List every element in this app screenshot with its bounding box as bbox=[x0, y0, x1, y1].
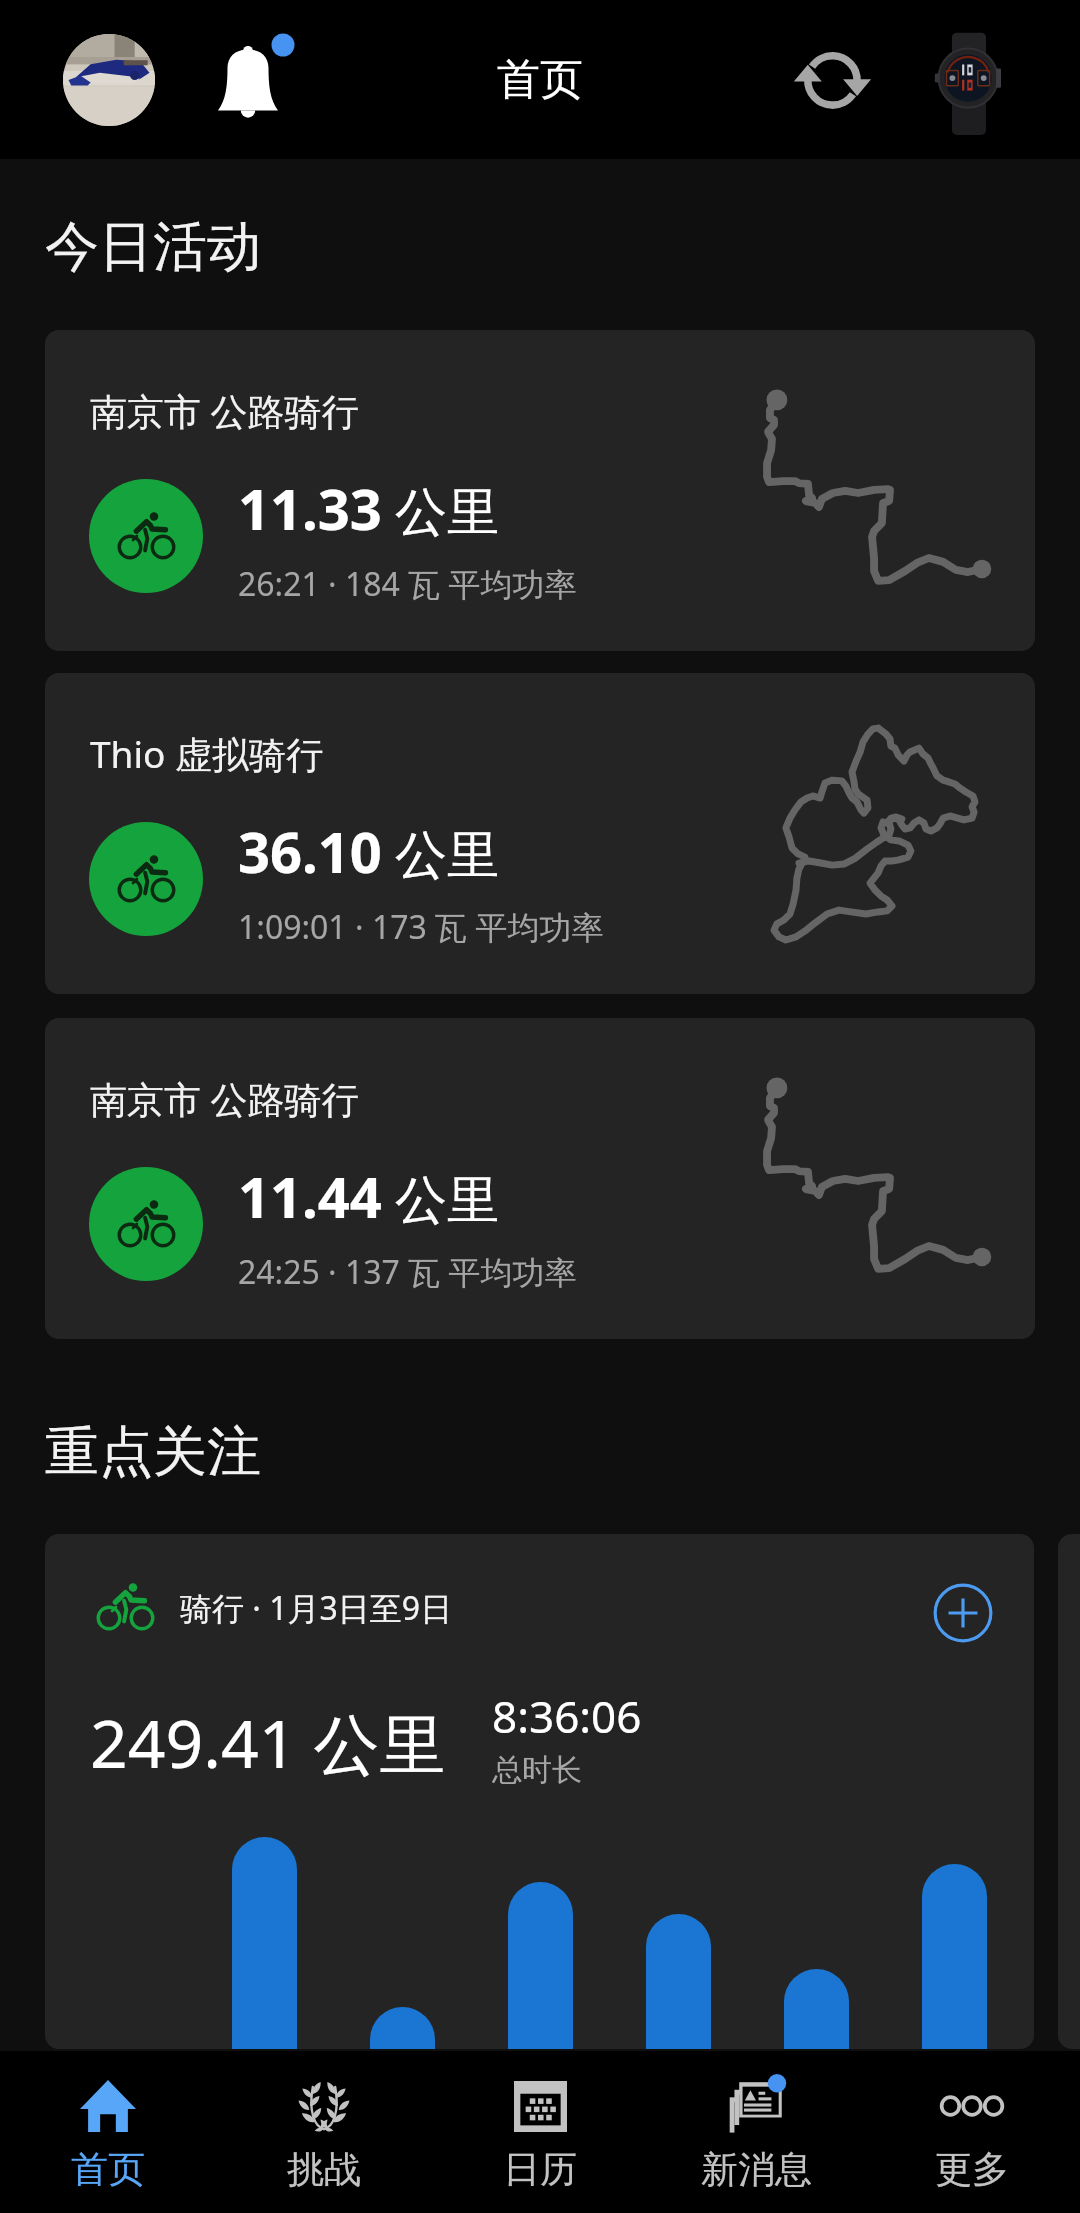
staticText: 总时长 bbox=[492, 1751, 582, 1789]
staticText: 更多 bbox=[935, 2146, 1009, 2193]
staticText: 公里 bbox=[395, 823, 499, 889]
button[interactable]: 挑战 bbox=[216, 2051, 432, 2213]
button[interactable]: Sync bbox=[782, 30, 882, 130]
staticText: 24:25 · 137 瓦 平均功率 bbox=[238, 1250, 577, 1294]
staticText: 1:09:01 · 173 瓦 平均功率 bbox=[238, 905, 604, 949]
staticText: 南京市 公路骑行 bbox=[90, 1073, 359, 1124]
staticText: 今日活动 bbox=[45, 213, 261, 281]
button[interactable]: Watch device bbox=[898, 16, 1022, 144]
staticText: 首页 bbox=[71, 2146, 145, 2193]
staticText: 公里 bbox=[395, 480, 499, 546]
button[interactable]: 南京市 公路骑行 bbox=[45, 330, 1035, 651]
staticText: 11.44 bbox=[238, 1158, 382, 1234]
button[interactable]: 骑行 · 1月3日至9日 bbox=[45, 1534, 1034, 2049]
staticText: 挑战 bbox=[287, 2146, 361, 2193]
staticText: 新消息 bbox=[701, 2146, 812, 2193]
staticText: 公里 bbox=[395, 1168, 499, 1234]
button[interactable]: 南京市 公路骑行 bbox=[45, 1018, 1035, 1339]
button[interactable]: Profile bbox=[63, 34, 155, 126]
button[interactable]: Thio 虚拟骑行 bbox=[45, 673, 1035, 994]
button[interactable]: 首页 bbox=[0, 2051, 216, 2213]
staticText: 日历 bbox=[503, 2146, 577, 2193]
staticText: Thio 虚拟骑行 bbox=[90, 728, 323, 779]
button[interactable]: Notifications bbox=[200, 30, 300, 130]
button[interactable]: 日历 bbox=[432, 2051, 648, 2213]
staticText: 首页 bbox=[497, 53, 583, 107]
button[interactable]: 更多 bbox=[864, 2051, 1080, 2213]
staticText: 249.41 公里 bbox=[90, 1697, 446, 1787]
staticText: 8:36:06 bbox=[492, 1686, 642, 1746]
staticText: 重点关注 bbox=[45, 1418, 261, 1486]
button[interactable]: 新消息 bbox=[648, 2051, 864, 2213]
staticText: 11.33 bbox=[238, 470, 382, 546]
button[interactable]: Add goal bbox=[927, 1577, 999, 1649]
staticText: 骑行 · 1月3日至9日 bbox=[180, 1586, 453, 1630]
staticText: 南京市 公路骑行 bbox=[90, 385, 359, 436]
staticText: 26:21 · 184 瓦 平均功率 bbox=[238, 562, 577, 606]
staticText: 36.10 bbox=[238, 813, 382, 889]
